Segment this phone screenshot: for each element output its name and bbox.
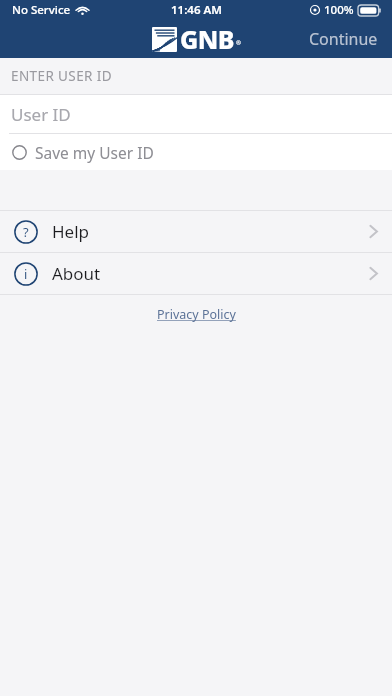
staticText: ?: [23, 223, 29, 241]
staticText: Help: [52, 220, 90, 243]
staticText: Privacy Policy: [157, 306, 236, 323]
staticText: i: [24, 265, 28, 283]
staticText: 100%: [324, 2, 354, 18]
button[interactable]: i: [0, 253, 392, 294]
staticText: ®: [236, 39, 241, 47]
staticText: No Service: [12, 2, 71, 18]
button[interactable]: User ID: [0, 95, 392, 133]
other: Open: [369, 266, 378, 281]
button[interactable]: ?: [0, 211, 392, 252]
staticText: Save my User ID: [35, 142, 154, 163]
staticText: Continue: [309, 28, 378, 50]
staticText: GNB: [180, 22, 234, 56]
button[interactable]: Privacy Policy: [147, 303, 246, 326]
other: Open: [369, 224, 378, 239]
staticText: About: [52, 262, 101, 285]
staticText: User ID: [11, 103, 71, 126]
staticText: ENTER USER ID: [11, 67, 113, 85]
button[interactable]: Continue: [295, 22, 392, 56]
button[interactable]: Save my User ID: [0, 134, 392, 170]
staticText: 11:46 AM: [171, 2, 222, 18]
